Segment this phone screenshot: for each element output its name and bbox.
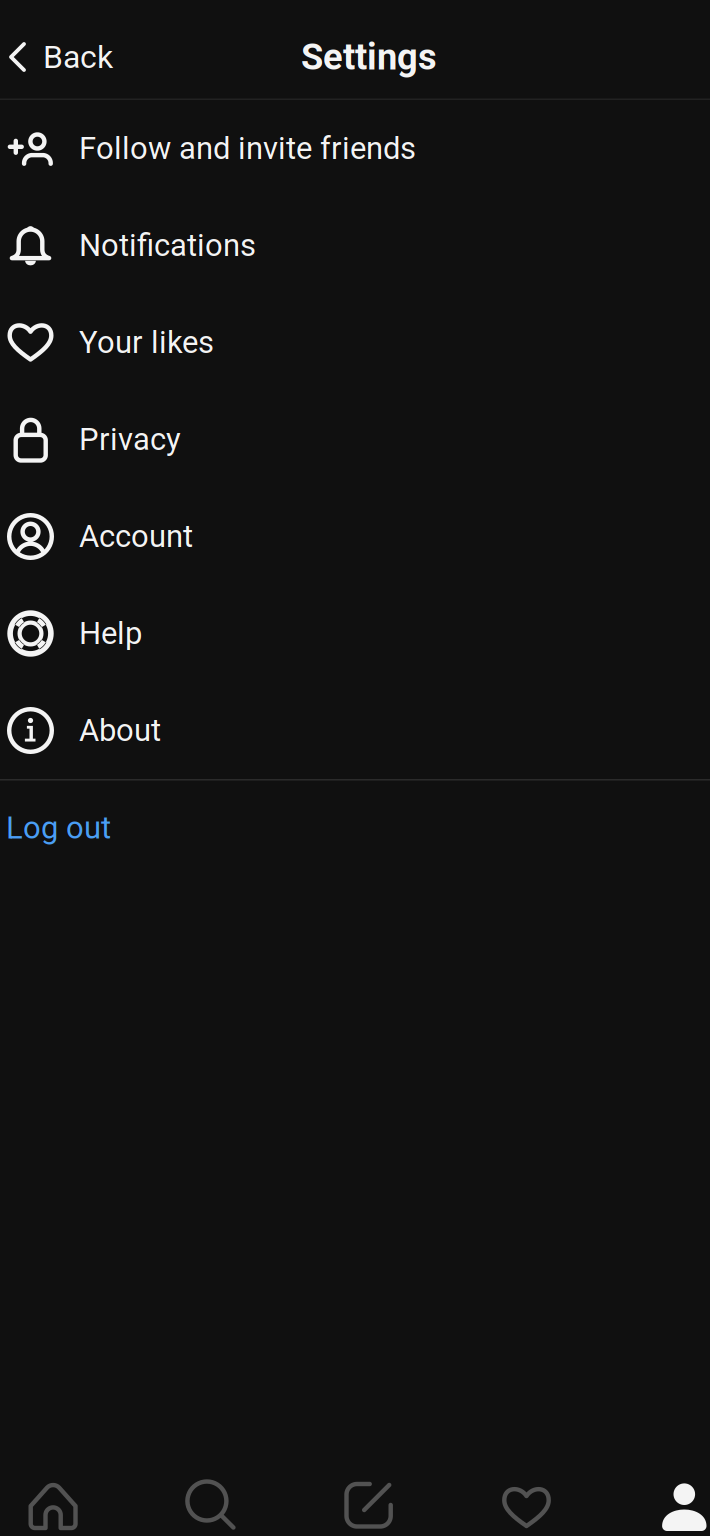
staticText: Log out — [6, 810, 111, 846]
button[interactable]: Your likes — [0, 294, 710, 391]
button[interactable]: Activity — [448, 1458, 605, 1536]
staticText: Back — [43, 38, 113, 76]
button[interactable]: Log out — [0, 780, 710, 875]
staticText: Settings — [301, 36, 437, 78]
button[interactable]: Help — [0, 585, 710, 682]
staticText: Privacy — [79, 421, 181, 458]
staticText: Account — [79, 518, 193, 555]
button[interactable]: About — [0, 682, 710, 779]
button[interactable]: Compose — [290, 1458, 448, 1536]
staticText: Follow and invite friends — [79, 130, 416, 167]
button[interactable]: Follow and invite friends — [0, 100, 710, 197]
staticText: Help — [79, 615, 142, 652]
button[interactable]: Search — [132, 1458, 290, 1536]
button[interactable]: Profile — [605, 1458, 710, 1536]
staticText: About — [79, 712, 161, 749]
button[interactable]: Home — [0, 1458, 132, 1536]
button[interactable]: Back — [0, 11, 125, 89]
button[interactable]: Notifications — [0, 197, 710, 294]
staticText: Your likes — [79, 324, 214, 361]
button[interactable]: Account — [0, 488, 710, 585]
staticText: Notifications — [79, 227, 256, 264]
button[interactable]: Privacy — [0, 391, 710, 488]
